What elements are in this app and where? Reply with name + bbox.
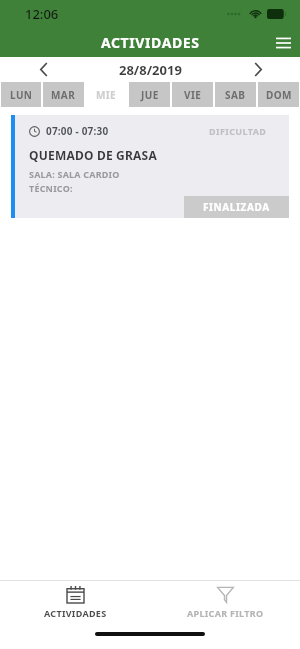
button[interactable]: VIE (172, 82, 213, 107)
staticText: DOM (266, 88, 292, 102)
button[interactable]: Previous day (30, 57, 58, 82)
staticText: TÉCNICO: (29, 182, 73, 194)
button[interactable]: SAB (215, 82, 256, 107)
staticText: ACTIVIDADES (44, 607, 107, 619)
staticText: SALA: SALA CARDIO (29, 168, 120, 180)
staticText: SAB (225, 88, 246, 102)
button[interactable]: JUE (129, 82, 170, 107)
staticText: 12:06 (25, 5, 59, 23)
staticText: 07:00 - 07:30 (46, 124, 109, 138)
button[interactable]: APLICAR FILTRO (150, 581, 300, 623)
staticText: FINALIZADA (203, 200, 270, 214)
staticText: ACTIVIDADES (101, 33, 200, 52)
button[interactable]: 07:00 - 07:30 (11, 115, 289, 218)
button[interactable]: MIE (86, 82, 127, 107)
staticText: LUN (10, 88, 33, 102)
button[interactable]: LUN (1, 82, 41, 107)
staticText: JUE (141, 88, 159, 102)
staticText: MAR (51, 88, 76, 102)
button[interactable]: MAR (43, 82, 84, 107)
button[interactable]: Menu (266, 28, 300, 57)
button[interactable]: DOM (258, 82, 299, 107)
staticText: VIE (184, 88, 202, 102)
staticText: QUEMADO DE GRASA (29, 147, 157, 163)
button[interactable]: Next day (244, 57, 272, 82)
button[interactable]: FINALIZADA (184, 196, 289, 218)
staticText: 28/8/2019 (119, 61, 182, 79)
staticText: DIFICULTAD (209, 125, 267, 137)
button[interactable]: ACTIVIDADES (0, 581, 150, 623)
staticText: APLICAR FILTRO (187, 607, 264, 619)
staticText: MIE (96, 88, 117, 102)
